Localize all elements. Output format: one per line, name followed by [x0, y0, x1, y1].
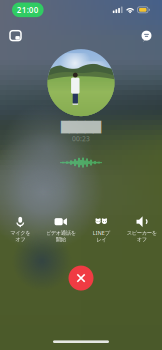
staticText: █████ [61, 121, 101, 133]
button[interactable]: End call [64, 261, 98, 295]
staticText: ビデオ通話を [46, 230, 76, 236]
button[interactable]: マイクを [0, 214, 40, 245]
staticText: スピーカーを [127, 230, 157, 236]
staticText: オフ [15, 236, 25, 243]
staticText: レイ [96, 236, 106, 243]
staticText: 00:23 [72, 134, 90, 143]
button[interactable]: スピーカーを [121, 214, 162, 245]
button[interactable]: LINEプ [81, 213, 121, 245]
staticText: マイクを [10, 230, 30, 236]
button[interactable]: Open chat [137, 26, 156, 45]
button[interactable]: Minimise call [6, 26, 25, 45]
button[interactable]: ビデオ通話を [40, 214, 81, 245]
staticText: LINEプ [93, 229, 110, 236]
staticText: オフ [137, 236, 147, 243]
staticText: 開始 [56, 236, 66, 243]
staticText: 21:00 [17, 4, 39, 15]
